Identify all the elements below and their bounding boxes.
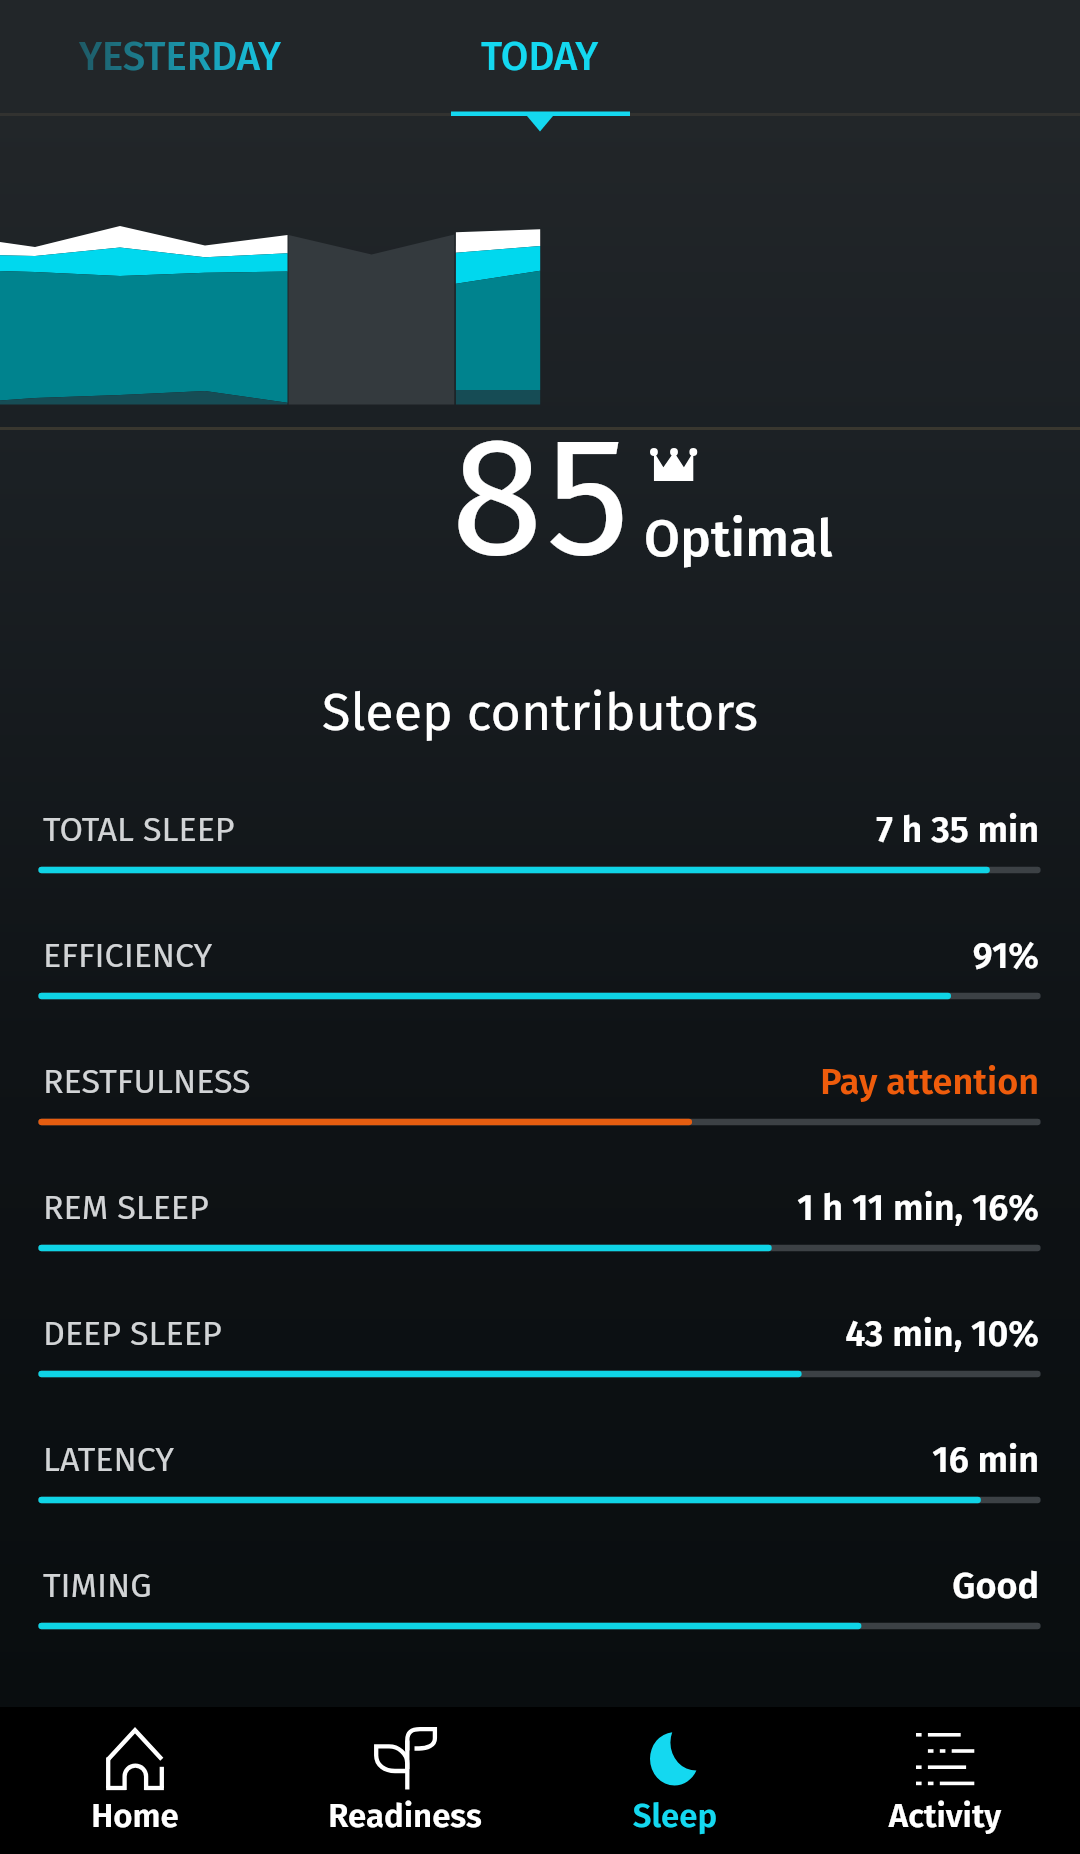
staticText: Home [0,1796,270,1836]
staticText: REM SLEEP [43,1187,209,1228]
staticText: 85 [451,398,633,598]
staticText: 1 h 11 min, 16% [0,1186,1039,1229]
staticText: Sleep contributors [0,681,1080,743]
staticText: RESTFULNESS [43,1061,251,1102]
button[interactable]: Home [0,1707,270,1854]
button[interactable]: DEEP SLEEP [0,1312,1080,1438]
staticText: EFFICIENCY [43,935,213,976]
staticText: Good [0,1564,1039,1607]
staticText: TODAY [481,33,599,81]
staticText: DEEP SLEEP [43,1313,222,1354]
staticText: 16 min [0,1438,1039,1481]
button[interactable]: TIMING [0,1564,1080,1690]
staticText: LATENCY [43,1439,174,1480]
staticText: 7 h 35 min [0,808,1039,851]
staticText: Optimal [644,507,833,569]
staticText: 91% [0,934,1039,977]
staticText: Sleep [540,1796,810,1836]
button[interactable]: EFFICIENCY [0,934,1080,1060]
staticText: Pay attention [0,1060,1039,1103]
staticText: Activity [810,1796,1080,1836]
button[interactable]: Sleep [540,1707,810,1854]
staticText: TIMING [43,1565,152,1606]
button[interactable]: TODAY [360,0,720,112]
staticText: Readiness [270,1796,540,1836]
button[interactable]: YESTERDAY [0,0,360,112]
staticText: YESTERDAY [79,33,281,81]
button[interactable]: RESTFULNESS [0,1060,1080,1186]
button[interactable]: REM SLEEP [0,1186,1080,1312]
button[interactable]: LATENCY [0,1438,1080,1564]
staticText: 43 min, 10% [0,1312,1039,1355]
staticText: TOTAL SLEEP [43,809,235,850]
button[interactable]: TOTAL SLEEP [0,808,1080,934]
button[interactable]: Readiness [270,1707,540,1854]
other: Optimal crown [650,448,697,481]
button[interactable]: Activity [810,1707,1080,1854]
